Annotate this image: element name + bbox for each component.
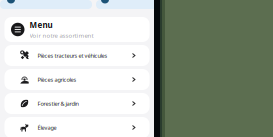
button[interactable]: Élevage: [4, 117, 149, 137]
button[interactable]: Pièces agricoles: [4, 69, 149, 90]
button[interactable]: Menu: [4, 17, 149, 42]
staticText: Pièces tracteurs et véhicules: [37, 52, 107, 59]
button[interactable]: Forestier & jardin: [4, 93, 149, 114]
staticText: Menu: [29, 19, 52, 30]
staticText: Pièces agricoles: [37, 76, 76, 83]
button[interactable]: Quick link: [0, 0, 92, 9]
staticText: Voir notre assortiment: [29, 31, 93, 40]
staticText: Élevage: [37, 124, 56, 131]
staticText: Forestier & jardin: [37, 100, 78, 107]
button[interactable]: Quick link: [96, 0, 188, 9]
button[interactable]: Pièces tracteurs et véhicules: [4, 45, 149, 66]
